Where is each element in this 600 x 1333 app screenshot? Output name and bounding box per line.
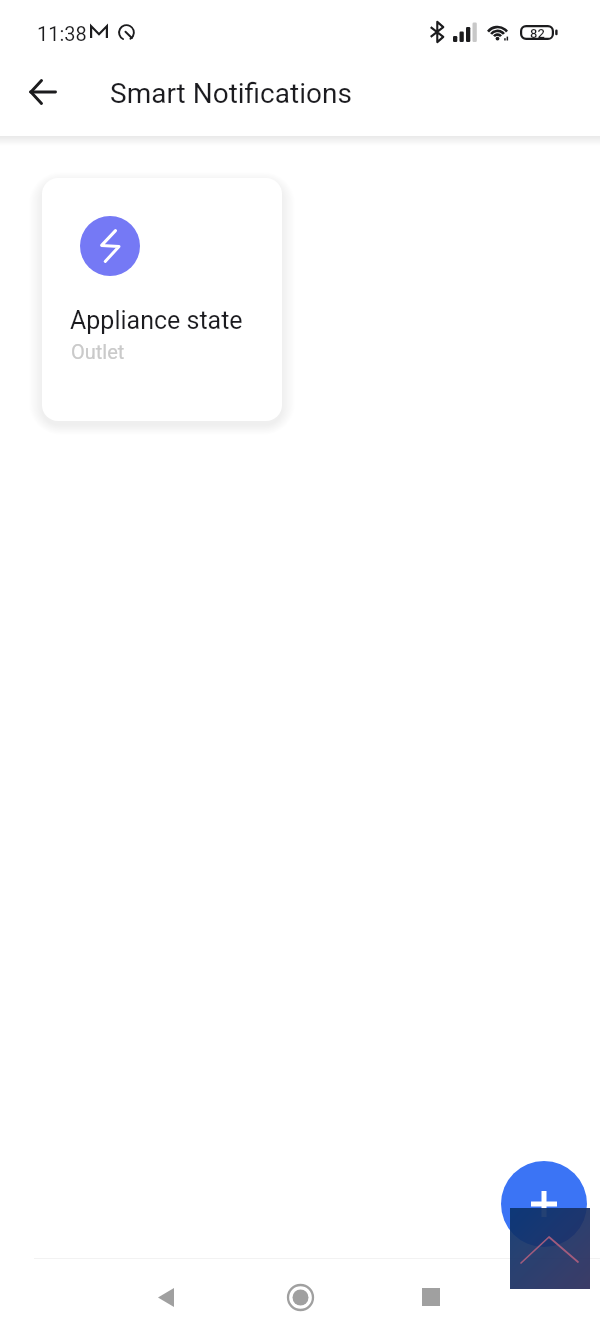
button[interactable]: Recent apps <box>403 1269 459 1325</box>
staticText: Appliance state <box>70 306 243 335</box>
staticText: 11:38 <box>37 22 87 45</box>
staticText: Smart Notifications <box>110 77 352 110</box>
staticText: Outlet <box>71 340 125 363</box>
button[interactable]: Home <box>272 1269 328 1325</box>
staticText: 82 <box>530 26 545 41</box>
button[interactable]: Back <box>18 67 68 117</box>
button[interactable]: Add <box>501 1161 587 1247</box>
button[interactable]: Back <box>138 1269 194 1325</box>
button[interactable]: Appliance state <box>42 178 282 421</box>
